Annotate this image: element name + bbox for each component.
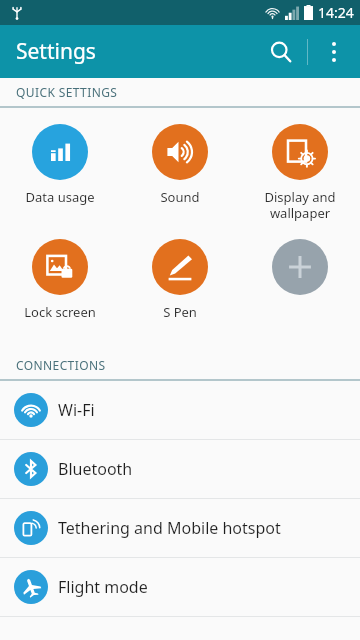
- staticText: Lock screen: [24, 303, 96, 321]
- button[interactable]: Add shortcut: [240, 237, 360, 321]
- button[interactable]: Tethering and Mobile hotspot: [0, 499, 360, 557]
- staticText: 14:24: [318, 3, 354, 22]
- staticText: Display and wallpaper: [264, 188, 336, 221]
- button[interactable]: Display and wallpaper: [240, 122, 360, 223]
- button[interactable]: Bluetooth: [0, 440, 360, 498]
- button[interactable]: Lock screen: [0, 237, 120, 323]
- staticText: CONNECTIONS: [16, 357, 106, 373]
- staticText: Flight mode: [58, 576, 148, 598]
- staticText: S Pen: [163, 303, 197, 321]
- staticText: Wi-Fi: [58, 399, 95, 421]
- staticText: Sound: [160, 188, 200, 206]
- staticText: Tethering and Mobile hotspot: [58, 517, 281, 539]
- staticText: QUICK SETTINGS: [16, 84, 118, 100]
- button[interactable]: Wi-Fi: [0, 381, 360, 439]
- button[interactable]: Search: [255, 26, 307, 78]
- button[interactable]: Flight mode: [0, 558, 360, 616]
- button[interactable]: More options: [308, 26, 360, 78]
- staticText: Bluetooth: [58, 458, 133, 480]
- button[interactable]: S Pen: [120, 237, 240, 323]
- staticText: Data usage: [25, 188, 95, 206]
- button[interactable]: Sound: [120, 122, 240, 208]
- staticText: Settings: [16, 37, 96, 66]
- button[interactable]: Data usage: [0, 122, 120, 208]
